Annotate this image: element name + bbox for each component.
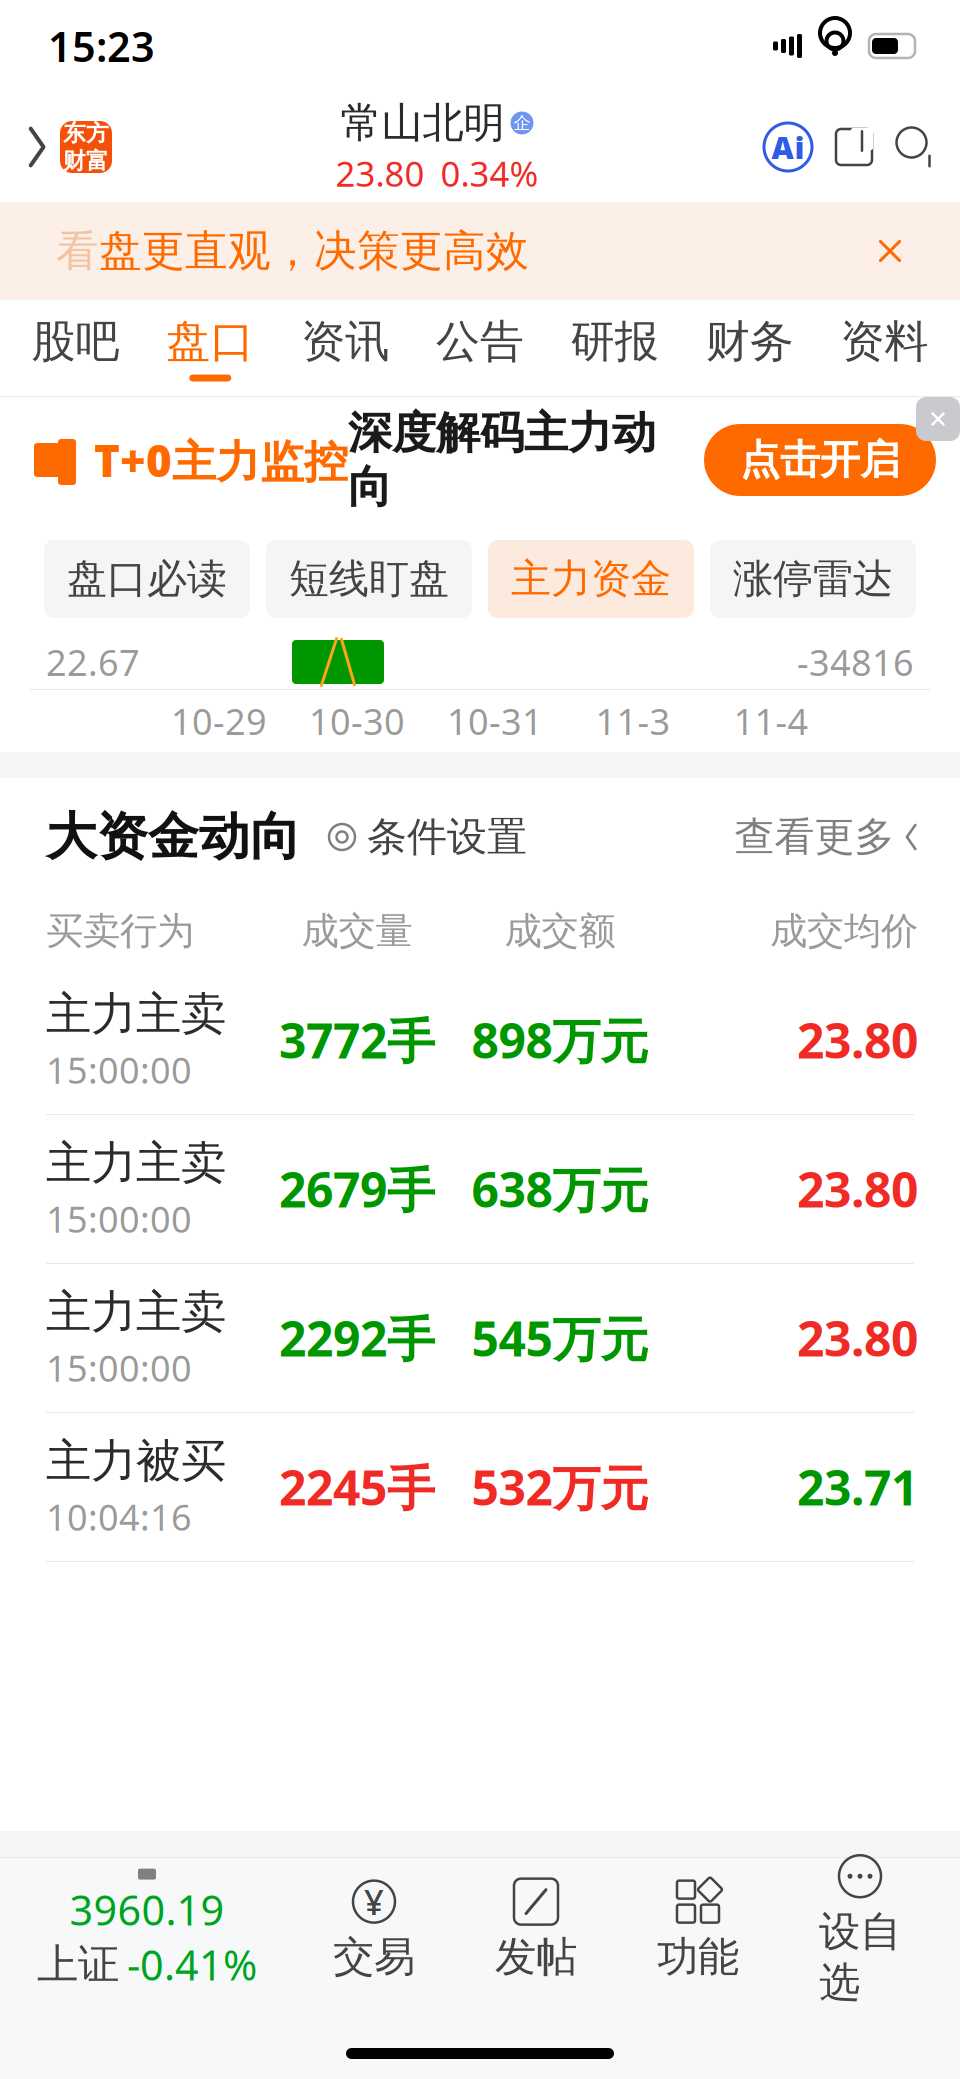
- staticText: 10-29: [171, 697, 267, 745]
- button[interactable]: 公告: [413, 300, 547, 396]
- staticText: 15:00:00: [46, 1344, 192, 1392]
- staticText: 财务: [706, 314, 794, 368]
- button[interactable]: ¥: [314, 1876, 434, 1982]
- staticText: 盘更直观，决策更高效: [99, 225, 529, 277]
- staticText: 盘口: [166, 314, 254, 368]
- staticText: 股吧: [31, 314, 119, 368]
- staticText: 企: [513, 112, 530, 134]
- staticText: -34816: [797, 638, 914, 686]
- staticText: 成交均价: [770, 908, 918, 954]
- staticText: 常山北明: [340, 98, 504, 148]
- button[interactable]: 3960.19: [22, 1866, 272, 1992]
- staticText: 发帖: [495, 1932, 577, 1982]
- staticText: 研报: [571, 314, 659, 368]
- staticText: 23.71: [797, 1455, 918, 1519]
- staticText: 23.80: [797, 1008, 918, 1072]
- button[interactable]: 功能: [638, 1876, 758, 1982]
- staticText: 设自选: [819, 1906, 901, 2008]
- button[interactable]: 关闭: [860, 221, 920, 281]
- staticText: ¥: [364, 1879, 384, 1925]
- staticText: 资料: [841, 314, 929, 368]
- staticText: 公告: [436, 314, 524, 368]
- staticText: 15:23: [48, 19, 155, 73]
- button[interactable]: 资料: [817, 300, 952, 396]
- staticText: 点击开启: [740, 435, 900, 484]
- staticText: 10-30: [309, 697, 405, 745]
- staticText: 10-31: [447, 697, 543, 745]
- staticText: 看: [56, 225, 99, 277]
- staticText: 深度解码主力动向: [348, 406, 656, 514]
- button[interactable]: 资讯: [278, 300, 413, 396]
- staticText: 主力主卖: [46, 1284, 226, 1340]
- staticText: 898万元: [471, 1008, 648, 1072]
- staticText: -0.41%: [127, 1937, 257, 1992]
- staticText: 545万元: [471, 1306, 648, 1370]
- staticText: 2292手: [279, 1306, 435, 1370]
- staticText: 23.80: [335, 150, 424, 196]
- staticText: 主力被买: [46, 1433, 226, 1489]
- staticText: 23.80: [797, 1306, 918, 1370]
- button[interactable]: 分享: [832, 125, 876, 169]
- staticText: 资讯: [301, 314, 389, 368]
- staticText: 涨停雷达: [733, 554, 893, 603]
- staticText: i: [794, 127, 804, 167]
- staticText: 532万元: [471, 1455, 648, 1519]
- button[interactable]: 搜索: [894, 125, 938, 169]
- button[interactable]: 东方财富: [60, 121, 112, 173]
- staticText: 15:00:00: [46, 1195, 192, 1243]
- staticText: 2679手: [279, 1157, 435, 1221]
- staticText: 上证: [37, 1939, 119, 1990]
- staticText: 10:04:16: [46, 1493, 192, 1541]
- staticText: 3960.19: [69, 1882, 224, 1937]
- staticText: 主力主卖: [46, 986, 226, 1042]
- button[interactable]: 主力资金: [488, 540, 694, 618]
- staticText: 638万元: [471, 1157, 648, 1221]
- button[interactable]: 股吧: [8, 300, 143, 396]
- button[interactable]: 点击开启: [704, 424, 936, 496]
- button[interactable]: 财务: [682, 300, 817, 396]
- staticText: 成交量: [301, 908, 412, 954]
- button[interactable]: 主力主卖: [0, 966, 960, 1115]
- button[interactable]: 主力主卖: [0, 1115, 960, 1264]
- staticText: 盘口必读: [67, 554, 227, 603]
- button[interactable]: 涨停雷达: [710, 540, 916, 618]
- staticText: 查看更多: [734, 812, 894, 861]
- button[interactable]: 主力主卖: [0, 1264, 960, 1413]
- staticText: 11-3: [595, 697, 670, 745]
- button[interactable]: 关闭广告: [916, 397, 960, 441]
- button[interactable]: 返回: [14, 119, 60, 175]
- button[interactable]: 主力被买: [0, 1413, 960, 1562]
- button[interactable]: 研报: [547, 300, 682, 396]
- button[interactable]: 盘口: [143, 300, 278, 396]
- staticText: 成交额: [504, 908, 615, 954]
- staticText: 条件设置: [367, 812, 527, 861]
- staticText: 交易: [333, 1932, 415, 1982]
- button[interactable]: 设自选: [800, 1850, 920, 2008]
- staticText: 0.34%: [440, 150, 538, 196]
- staticText: 主力资金: [511, 554, 671, 603]
- staticText: 主力主卖: [46, 1135, 226, 1191]
- button[interactable]: AI 助手: [762, 121, 814, 173]
- button[interactable]: 盘口必读: [44, 540, 250, 618]
- staticText: 买卖行为: [46, 908, 194, 954]
- staticText: 功能: [657, 1932, 739, 1982]
- staticText: 短线盯盘: [289, 554, 449, 603]
- staticText: A: [771, 127, 793, 167]
- staticText: 15:00:00: [46, 1046, 192, 1094]
- button[interactable]: 发帖: [476, 1876, 596, 1982]
- button[interactable]: 条件设置: [327, 812, 527, 861]
- staticText: 2245手: [279, 1455, 435, 1519]
- staticText: 22.67: [46, 638, 140, 686]
- staticText: 财富: [63, 147, 109, 175]
- staticText: 东方: [63, 119, 109, 147]
- staticText: 3772手: [279, 1008, 435, 1072]
- staticText: T+0主力监控: [94, 431, 348, 489]
- staticText: 大资金动向: [46, 806, 301, 868]
- button[interactable]: 查看更多: [734, 812, 918, 861]
- staticText: 11-4: [733, 697, 808, 745]
- button[interactable]: 短线盯盘: [266, 540, 472, 618]
- staticText: 23.80: [797, 1157, 918, 1221]
